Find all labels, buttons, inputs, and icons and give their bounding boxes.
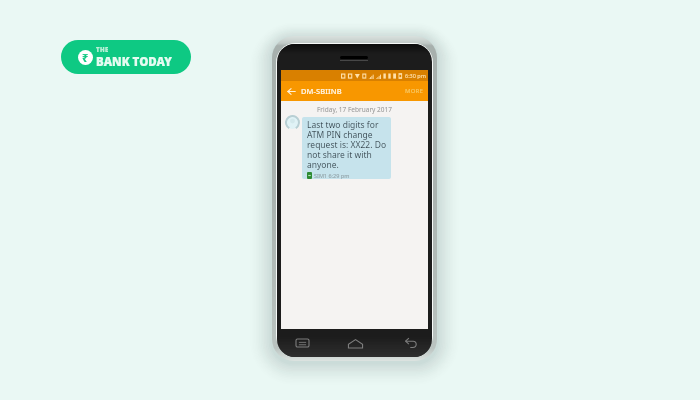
button[interactable]: Home: [340, 329, 370, 357]
staticText: Last two digits for ATM PIN change reque…: [307, 119, 388, 171]
staticText: Friday, 17 February 2017: [317, 105, 392, 114]
button[interactable]: Back: [395, 329, 425, 357]
button[interactable]: Recent apps: [287, 329, 317, 357]
staticText: MORE: [405, 87, 424, 95]
staticText: 6:30 pm: [405, 72, 426, 79]
button[interactable]: ₹: [61, 40, 191, 74]
staticText: DM-SBIINB: [301, 86, 342, 96]
staticText: THE: [96, 46, 109, 54]
button[interactable]: Last two digits for ATM PIN change reque…: [302, 117, 391, 179]
staticText: SIM1 6:29 pm: [314, 172, 350, 179]
staticText: ₹: [82, 50, 89, 65]
button[interactable]: MORE: [405, 87, 428, 95]
staticText: BANK TODAY: [96, 54, 172, 70]
button[interactable]: Back: [281, 81, 301, 101]
